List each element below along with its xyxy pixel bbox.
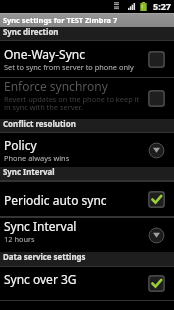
button[interactable]: Sync Interval [0, 218, 174, 252]
staticText: Periodic auto sync [4, 192, 107, 208]
staticText: Sync Interval [3, 167, 55, 178]
button[interactable]: One-Way-Sync [0, 41, 174, 77]
staticText: Data service settings [3, 252, 86, 263]
button[interactable]: Policy [0, 133, 174, 167]
staticText: Policy [4, 137, 37, 153]
button[interactable]: Toggle [148, 275, 165, 292]
staticText: Conflict resolution [3, 119, 76, 130]
staticText: One-Way-Sync [4, 46, 85, 62]
button[interactable]: Open menu [148, 142, 165, 159]
staticText: Sync settings for TEST Zimbra 7 [3, 15, 118, 25]
staticText: 5:27 [153, 0, 171, 12]
staticText: Set to sync from server to phone only [4, 62, 134, 72]
button[interactable]: Open menu [148, 227, 165, 244]
staticText: Enforce synchrony [4, 78, 108, 94]
button[interactable]: Toggle [148, 191, 165, 208]
staticText: Sync direction [3, 27, 59, 38]
button[interactable]: Enforce synchrony [0, 78, 174, 119]
staticText: 12 hours [4, 234, 35, 244]
button[interactable]: Sync over 3G [0, 267, 174, 300]
staticText: Sync over 3G [4, 271, 77, 287]
staticText: Phone always wins [4, 153, 70, 163]
button[interactable]: Toggle [148, 90, 165, 107]
button[interactable]: Toggle [148, 51, 165, 68]
staticText: Revert updates on the phone to keep it i… [4, 94, 140, 113]
staticText: Sync Interval [4, 218, 77, 234]
button[interactable]: Periodic auto sync [0, 182, 174, 216]
